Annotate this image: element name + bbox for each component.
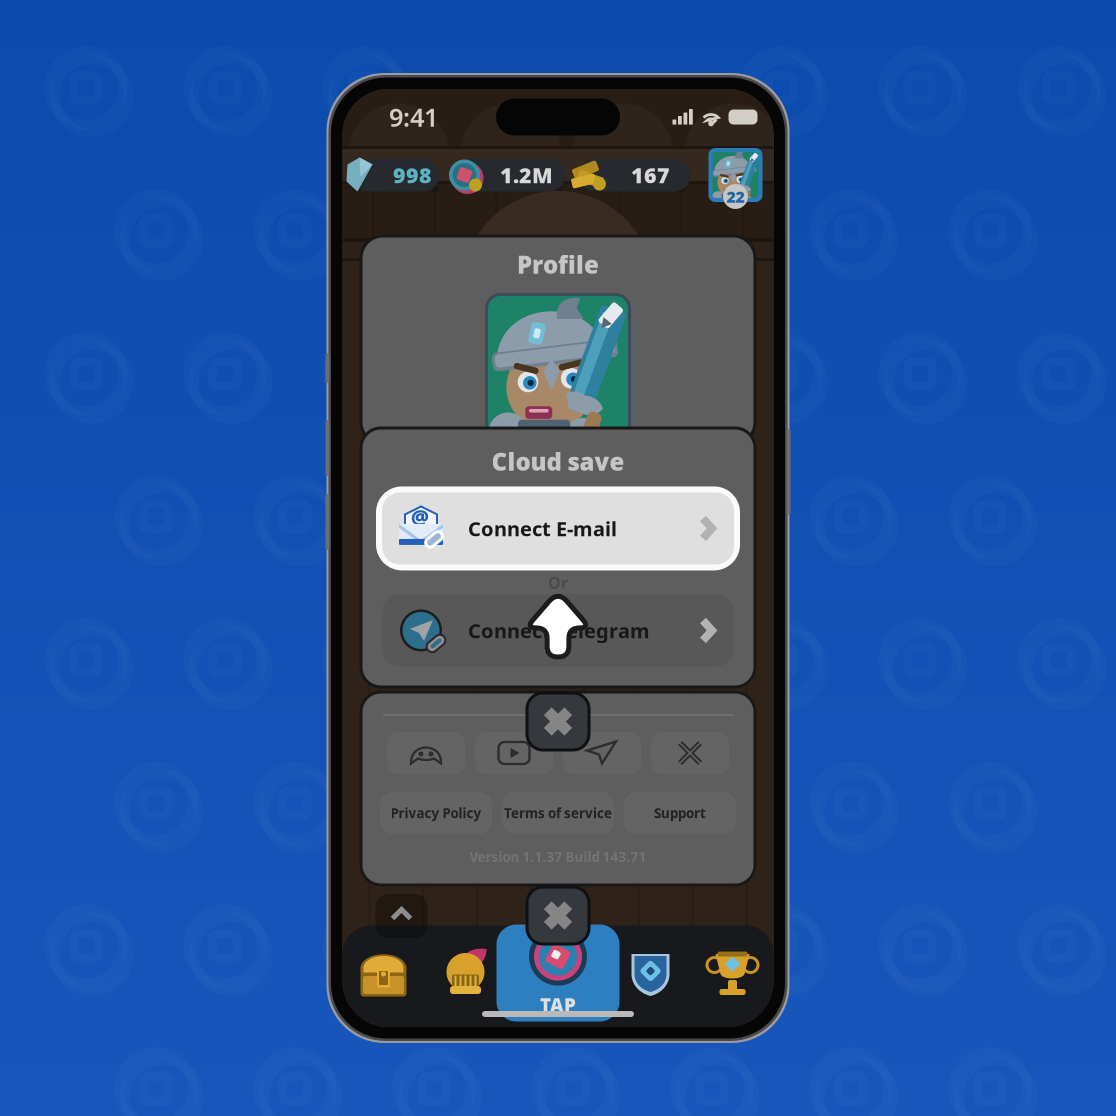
staticText: 167: [631, 161, 670, 189]
staticText: Cloud save: [491, 446, 624, 477]
staticText: Connect Telegram: [468, 617, 650, 644]
button[interactable]: Leaderboard: [691, 925, 773, 1022]
staticText: TAP: [540, 993, 576, 1017]
button[interactable]: @: [376, 486, 740, 570]
staticText: 998: [393, 161, 432, 189]
staticText: Profile: [517, 249, 599, 280]
button[interactable]: Terms of service: [502, 792, 614, 834]
staticText: @: [411, 503, 429, 530]
staticText: 9:41: [389, 100, 438, 134]
button[interactable]: Connect Telegram: [382, 594, 734, 666]
button[interactable]: Telegram: [563, 732, 641, 774]
button[interactable]: Heroes: [424, 925, 506, 1022]
button[interactable]: Discord: [387, 732, 465, 774]
staticText: Or: [548, 572, 568, 593]
button[interactable]: Close: [527, 887, 589, 944]
button[interactable]: X: [651, 732, 729, 774]
staticText: Terms of service: [504, 804, 612, 822]
button[interactable]: Profile, level 22: [709, 144, 761, 206]
button[interactable]: YouTube: [475, 732, 553, 774]
button[interactable]: Tap: [496, 924, 619, 1021]
button[interactable]: Support: [624, 792, 736, 834]
staticText: 1.2M: [500, 161, 553, 189]
staticText: Support: [654, 804, 706, 822]
button[interactable]: Clan: [609, 925, 691, 1022]
button[interactable]: Close: [527, 693, 589, 750]
button[interactable]: Chest: [342, 925, 424, 1022]
button[interactable]: Privacy Policy: [380, 792, 492, 834]
button[interactable]: Collapse: [375, 894, 427, 938]
staticText: Connect E-mail: [468, 515, 617, 542]
staticText: Privacy Policy: [390, 804, 481, 822]
staticText: 22: [726, 186, 744, 207]
staticText: Version 1.1.37 Build 143.71: [469, 848, 646, 866]
